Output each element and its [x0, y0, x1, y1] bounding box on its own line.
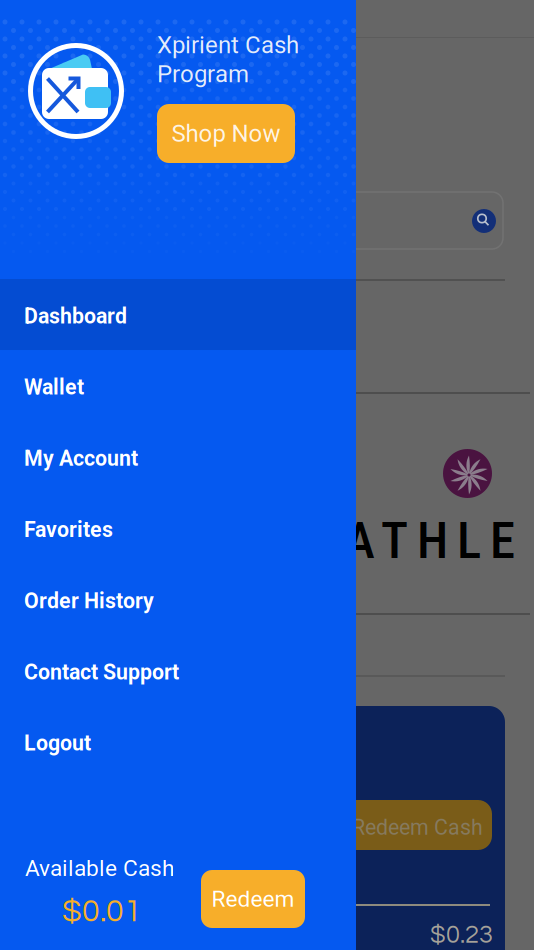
button[interactable]: Order History	[0, 564, 356, 635]
staticText: Available Cash	[25, 855, 174, 882]
button[interactable]: My Account	[0, 421, 356, 493]
staticText: Logout	[24, 731, 91, 756]
staticText: Xpirient Cash	[157, 31, 299, 59]
staticText: Dashboard	[24, 304, 127, 329]
button[interactable]: Shop Now	[157, 104, 295, 163]
staticText: Contact Support	[24, 660, 179, 685]
staticText: Favorites	[24, 517, 113, 542]
button[interactable]: Favorites	[0, 493, 356, 564]
staticText: Redeem	[211, 886, 294, 912]
staticText: Redeem Cash	[352, 815, 483, 840]
button[interactable]: Dashboard	[0, 279, 356, 350]
staticText: ATHLE	[345, 511, 515, 570]
staticText: Shop Now	[171, 119, 280, 147]
button[interactable]: Wallet	[0, 350, 356, 421]
button[interactable]: Redeem	[201, 870, 305, 928]
staticText: Program	[157, 60, 249, 88]
staticText: $0.23	[430, 922, 493, 948]
staticText: Wallet	[24, 375, 84, 400]
button[interactable]: Search	[472, 209, 496, 233]
button[interactable]: Contact Support	[0, 635, 356, 706]
button[interactable]: Logout	[0, 706, 356, 777]
staticText: $0.01	[62, 895, 142, 928]
staticText: Order History	[24, 588, 154, 613]
staticText: My Account	[24, 446, 138, 471]
